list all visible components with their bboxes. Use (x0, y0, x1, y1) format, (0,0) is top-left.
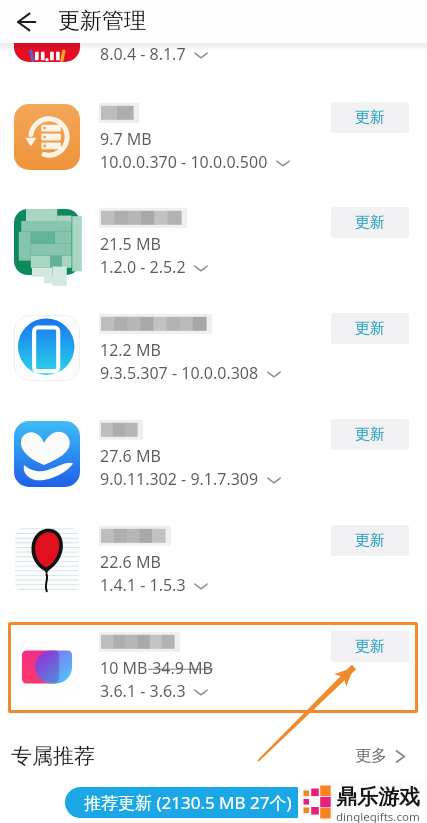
button[interactable]: 更新 (331, 313, 409, 344)
staticText: dinglegifts.com (336, 809, 420, 823)
button[interactable]: 12.2 MB (0, 309, 427, 409)
button[interactable]: 更新 (331, 419, 409, 450)
staticText: 10 MB (100, 657, 148, 679)
staticText: 21.5 MB (100, 233, 161, 255)
staticText: 1.4.1 - 1.5.3 (100, 574, 186, 596)
staticText: 9.0.11.302 - 9.1.7.309 (100, 468, 259, 490)
staticText: 更新 (355, 425, 385, 444)
button[interactable]: 更新 (331, 207, 409, 238)
button[interactable]: 8.0.4 - 8.1.7 (0, 0, 427, 90)
staticText: 10.0.0.370 - 10.0.0.500 (100, 151, 268, 173)
staticText: 推荐更新 (2130.5 MB 27个) (84, 791, 292, 814)
staticText: 鼎乐游戏 (336, 784, 420, 810)
staticText: 3.6.1 - 3.6.3 (100, 680, 186, 702)
staticText: 更多 (355, 746, 387, 766)
staticText: 22.6 MB (100, 551, 161, 573)
button[interactable]: 专属推荐 (0, 728, 427, 784)
staticText: 更新 (355, 637, 385, 656)
staticText: 专属推荐 (11, 743, 95, 769)
staticText: 27.6 MB (100, 445, 161, 467)
button[interactable]: 27.6 MB (0, 415, 427, 515)
button[interactable]: 10 MB (0, 627, 427, 727)
staticText: 9.3.5.307 - 10.0.0.308 (100, 362, 259, 384)
staticText: 34.9 MB (148, 657, 213, 679)
staticText: 12.2 MB (100, 339, 161, 361)
button[interactable]: 推荐更新 (2130.5 MB 27个) (65, 787, 311, 818)
button[interactable]: Back (9, 6, 41, 38)
button[interactable]: 22.6 MB (0, 521, 427, 621)
staticText: 更新管理 (58, 7, 146, 35)
staticText: 更新 (355, 531, 385, 550)
staticText: 9.7 MB (100, 128, 152, 150)
staticText: 1.2.0 - 2.5.2 (100, 256, 186, 278)
staticText: 更新 (355, 319, 385, 338)
button[interactable]: 更新 (331, 525, 409, 556)
button[interactable]: 更新 (331, 631, 409, 662)
button[interactable]: 更新 (331, 102, 409, 133)
staticText: 更新 (355, 108, 385, 127)
staticText: 更新 (355, 213, 385, 232)
button[interactable]: 21.5 MB (0, 203, 427, 303)
staticText: 8.0.4 - 8.1.7 (100, 43, 186, 65)
button[interactable]: 9.7 MB (0, 98, 427, 198)
